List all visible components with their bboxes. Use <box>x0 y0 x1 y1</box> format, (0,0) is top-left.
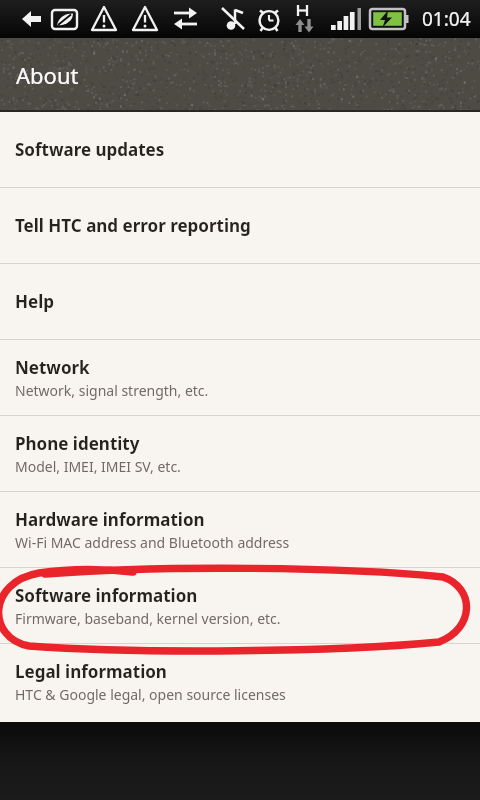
button[interactable]: Help <box>0 264 480 339</box>
staticText: Model, IMEI, IMEI SV, etc. <box>15 457 181 476</box>
button[interactable]: Tell HTC and error reporting <box>0 188 480 263</box>
staticText: Hardware information <box>15 508 205 531</box>
button[interactable]: Network <box>0 340 480 415</box>
staticText: 01:04 <box>422 6 471 32</box>
button[interactable]: Legal information <box>0 644 480 719</box>
button[interactable]: Phone identity <box>0 416 480 491</box>
other: Status bar <box>0 0 480 38</box>
staticText: Help <box>15 290 54 313</box>
staticText: Phone identity <box>15 432 140 455</box>
staticText: Tell HTC and error reporting <box>15 214 251 237</box>
button[interactable]: Software information <box>0 568 480 643</box>
staticText: Software information <box>15 584 198 607</box>
staticText: Network, signal strength, etc. <box>15 381 209 400</box>
staticText: Wi-Fi MAC address and Bluetooth address <box>15 533 290 552</box>
staticText: Software updates <box>15 138 165 161</box>
staticText: Network <box>15 356 90 379</box>
staticText: Firmware, baseband, kernel version, etc. <box>15 609 281 628</box>
staticText: Legal information <box>15 660 167 683</box>
staticText: About <box>16 60 79 90</box>
button[interactable]: Software updates <box>0 112 480 187</box>
staticText: HTC & Google legal, open source licenses <box>15 685 286 704</box>
button[interactable]: Hardware information <box>0 492 480 567</box>
